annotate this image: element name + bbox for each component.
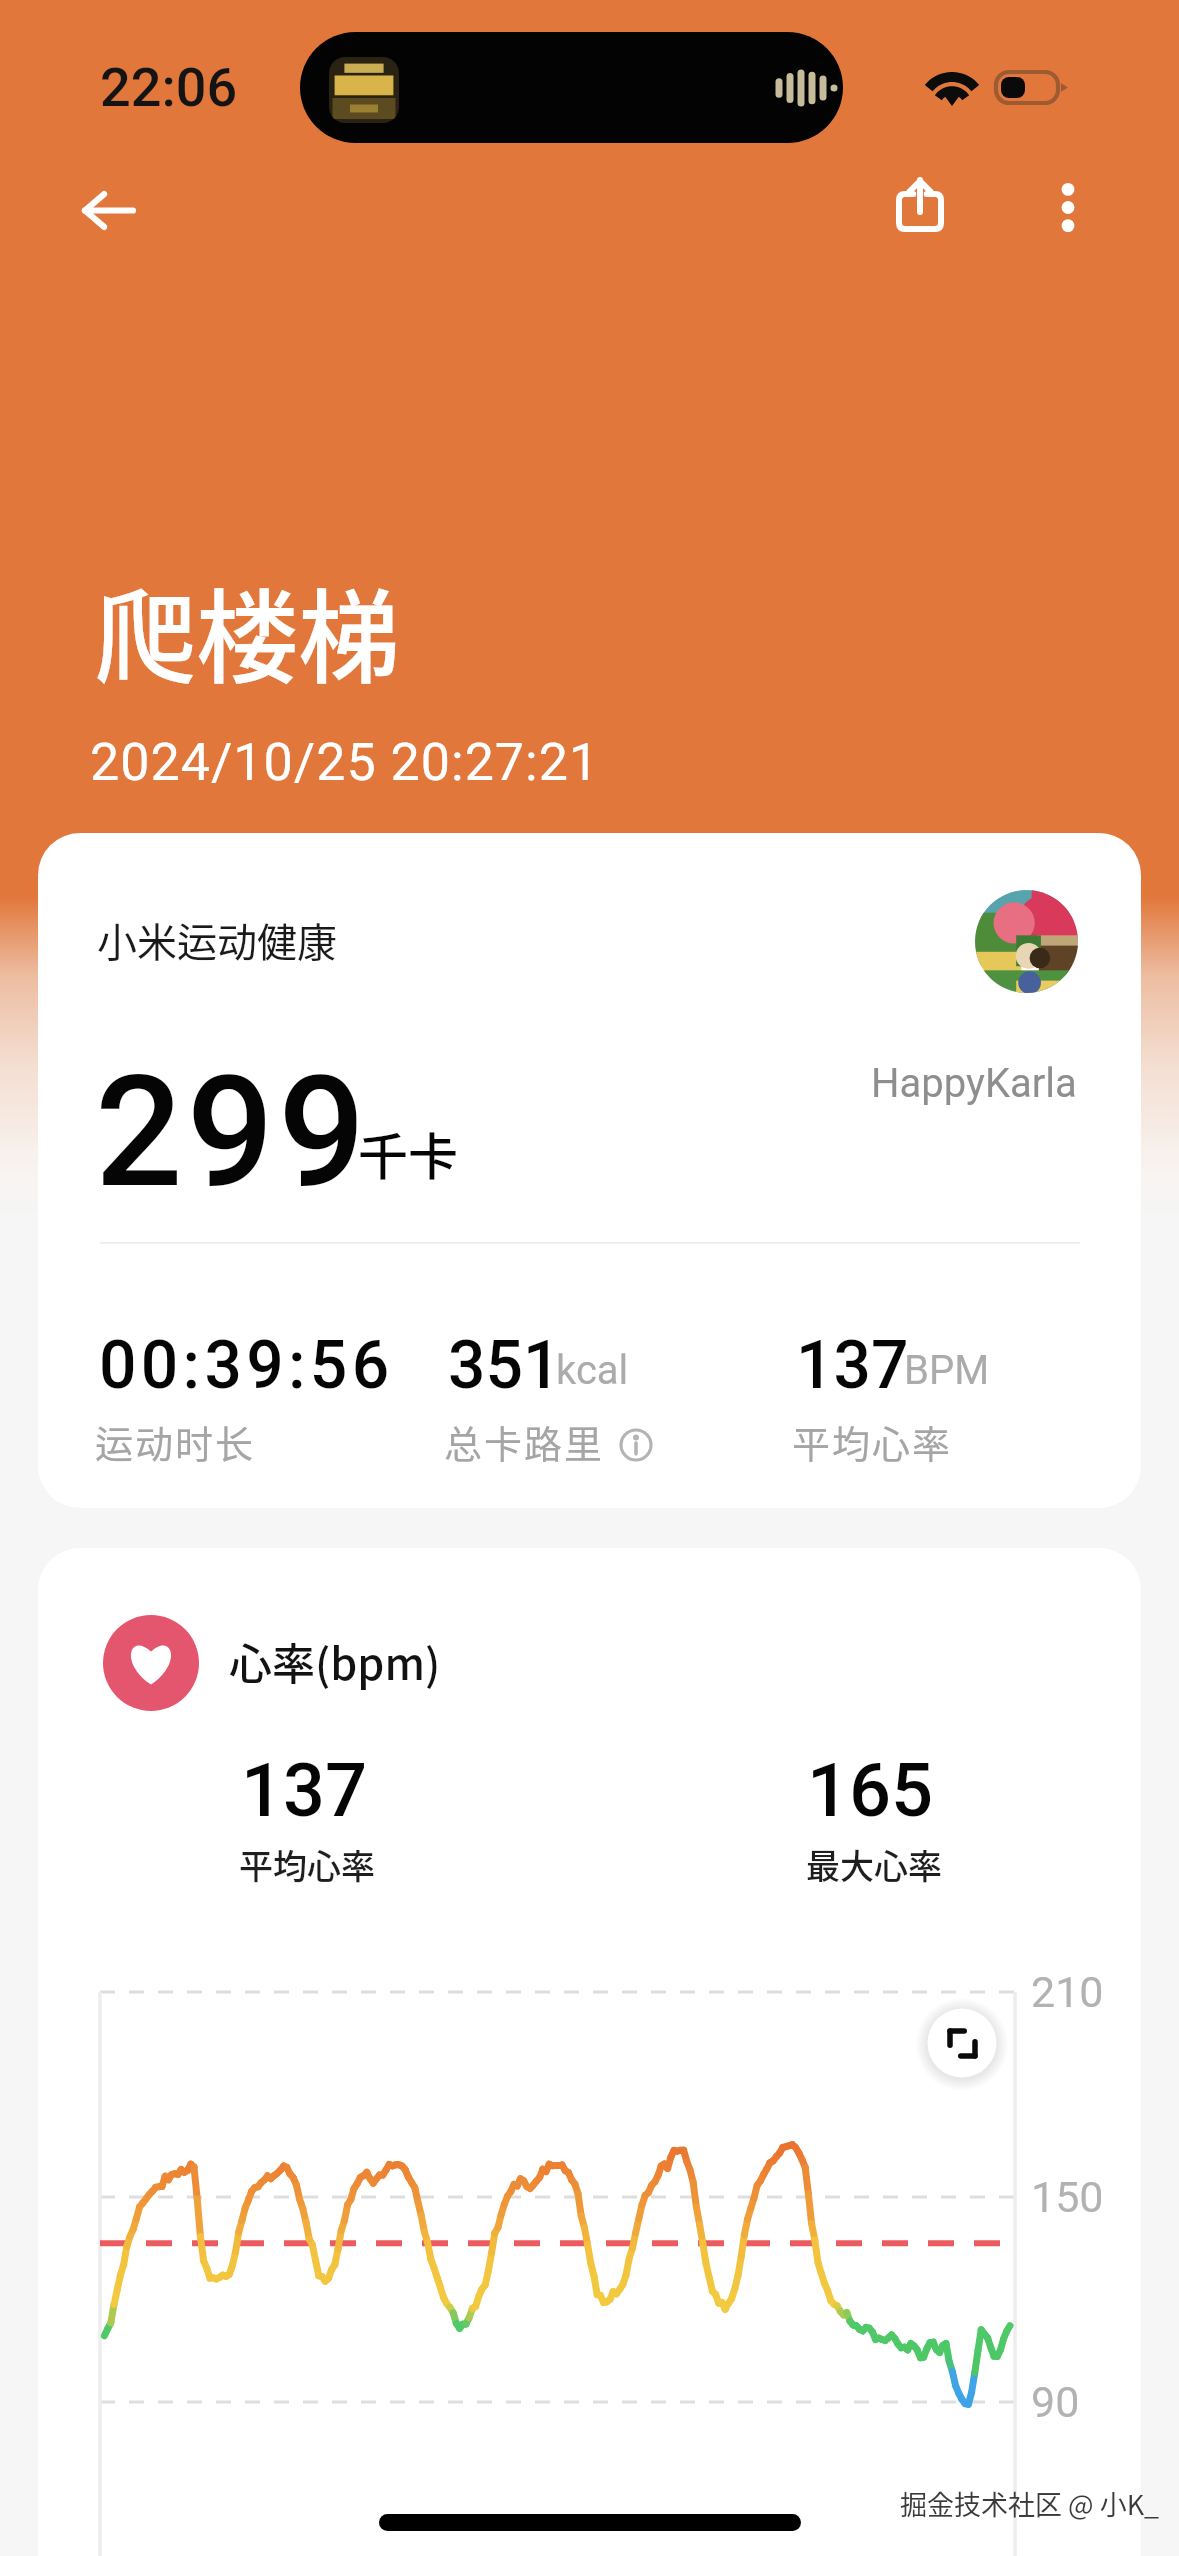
- staticText: BPM: [904, 1347, 990, 1394]
- staticText: 22:06: [100, 56, 238, 119]
- staticText: 千卡: [358, 1117, 458, 1189]
- staticText: 90: [1031, 2377, 1080, 2427]
- staticText: 掘金技术社区 @ 小K_: [900, 2484, 1160, 2523]
- staticText: 平均心率: [239, 1840, 375, 1889]
- staticText: 2024/10/25 20:27:21: [90, 732, 600, 793]
- staticText: kcal: [556, 1347, 629, 1394]
- staticText: 351: [448, 1327, 561, 1404]
- staticText: 137: [796, 1327, 909, 1404]
- staticText: 137: [241, 1747, 368, 1834]
- staticText: 爬楼梯: [94, 557, 400, 705]
- button[interactable]: Back: [58, 160, 158, 260]
- button[interactable]: Expand chart: [896, 1977, 1028, 2109]
- staticText: 165: [807, 1747, 934, 1834]
- button[interactable]: 小米运动健康: [38, 833, 1141, 1508]
- staticText: HappyKarla: [871, 1060, 1077, 1107]
- staticText: 00:39:56: [99, 1327, 394, 1404]
- staticText: 210: [1031, 1967, 1104, 2017]
- staticText: 运动时长: [95, 1414, 256, 1469]
- staticText: 小米运动健康: [97, 911, 337, 969]
- staticText: 150: [1031, 2172, 1104, 2222]
- staticText: 平均心率: [792, 1414, 953, 1469]
- staticText: 心率(bpm): [229, 1630, 441, 1692]
- staticText: 最大心率: [806, 1840, 942, 1889]
- button[interactable]: More options: [1018, 157, 1118, 257]
- staticText: 299: [95, 1042, 370, 1222]
- button[interactable]: Share: [870, 150, 970, 257]
- staticText: 总卡路里: [444, 1414, 605, 1469]
